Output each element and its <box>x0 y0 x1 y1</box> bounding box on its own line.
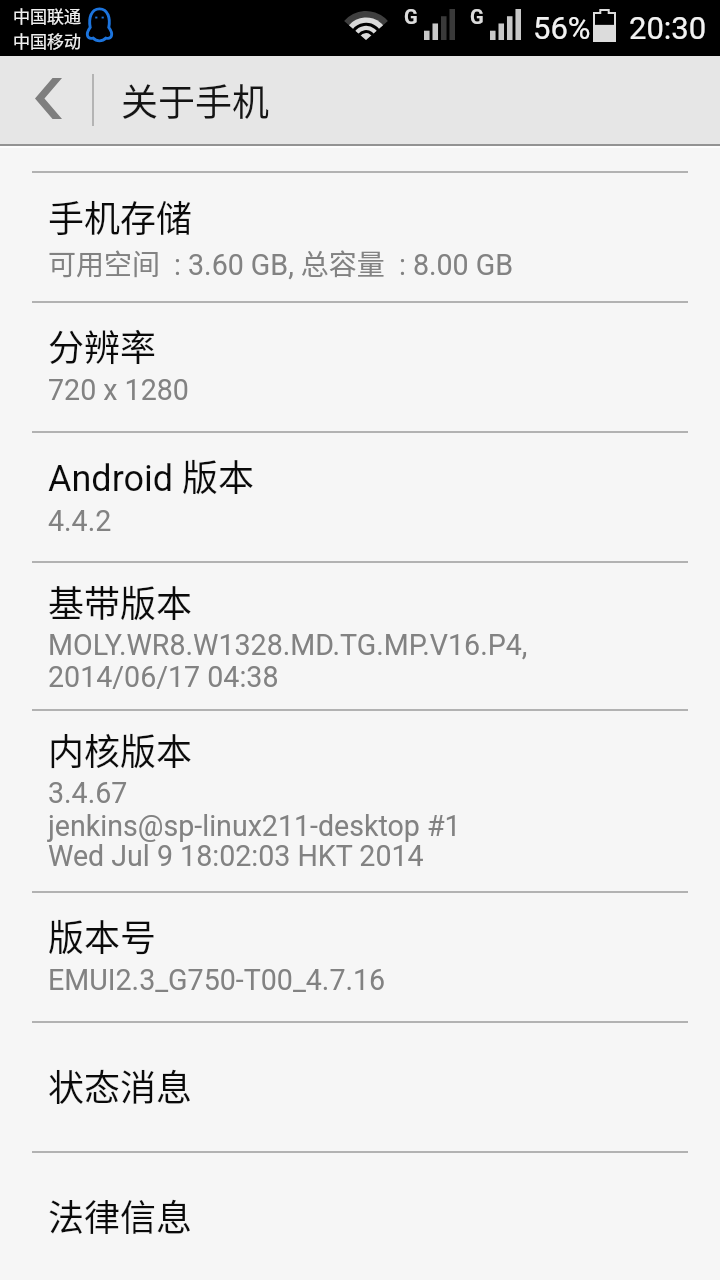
staticText: 中国联通 <box>13 3 81 28</box>
staticText: 手机存储 <box>48 190 193 242</box>
staticText: 20:30 <box>629 10 707 46</box>
button[interactable]: 分辨率 <box>0 303 720 431</box>
button[interactable]: 手机存储 <box>0 173 720 301</box>
staticText: 3.4.67 <box>48 776 128 810</box>
button[interactable]: Back <box>0 56 92 144</box>
button[interactable]: 法律信息 <box>0 1153 720 1280</box>
staticText: Wed Jul 9 18:02:03 HKT 2014 <box>48 839 424 873</box>
staticText: 720 x 1280 <box>48 373 189 407</box>
staticText: 分辨率 <box>48 319 157 371</box>
button[interactable]: 版本号 <box>0 893 720 1021</box>
staticText: 基带版本 <box>48 575 193 627</box>
button[interactable]: 状态消息 <box>0 1023 720 1151</box>
staticText: 中国移动 <box>13 28 81 53</box>
staticText: 关于手机 <box>121 73 269 127</box>
staticText: EMUI2.3_G750-T00_4.7.16 <box>48 963 386 997</box>
staticText: Android 版本 <box>48 449 255 501</box>
staticText: MOLY.WR8.W1328.MD.TG.MP.V16.P4, <box>48 628 528 662</box>
staticText: G <box>470 5 484 28</box>
staticText: 可用空间 :3.60 GB, 总容量 :8.00 GB <box>48 243 514 284</box>
staticText: G <box>404 5 418 28</box>
staticText: jenkins@sp-linux211-desktop #1 <box>48 809 461 843</box>
staticText: 56% <box>533 10 591 46</box>
staticText: 状态消息 <box>48 1059 193 1111</box>
button[interactable]: 基带版本 <box>0 563 720 709</box>
staticText: 内核版本 <box>48 723 193 775</box>
button[interactable]: Android 版本 <box>0 433 720 561</box>
staticText: 版本号 <box>48 909 157 961</box>
button[interactable]: 内核版本 <box>0 711 720 891</box>
staticText: 法律信息 <box>48 1189 193 1241</box>
staticText: 4.4.2 <box>48 504 112 538</box>
staticText: 2014/06/17 04:38 <box>48 660 279 694</box>
